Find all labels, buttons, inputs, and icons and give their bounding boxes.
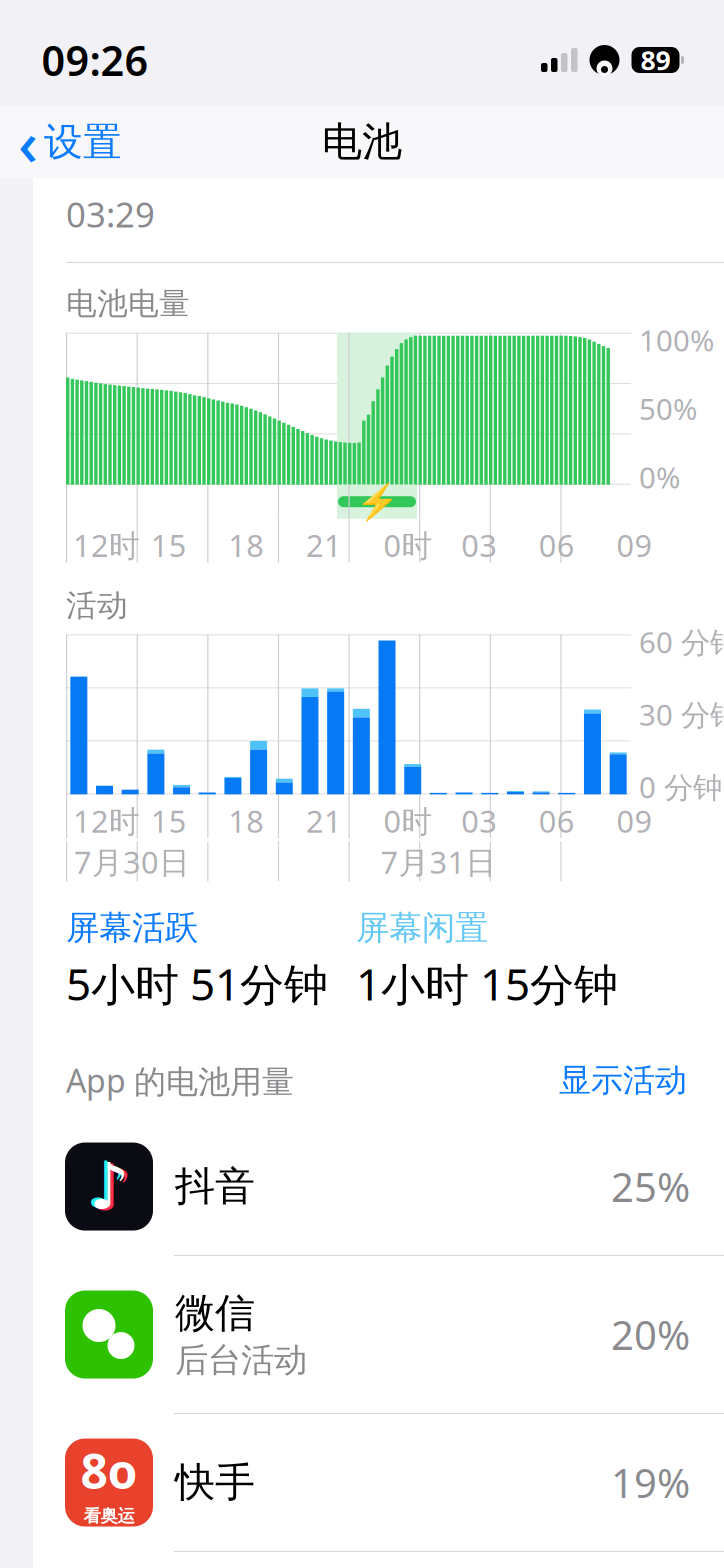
- staticText: 0时: [383, 525, 432, 565]
- staticText: 7月30日: [74, 841, 190, 882]
- staticText: 屏幕闲置: [356, 907, 488, 948]
- staticText: App 的电池用量: [66, 1059, 294, 1102]
- staticText: 0时: [383, 800, 432, 841]
- staticText: 03:29: [66, 191, 155, 237]
- staticText: 09: [616, 525, 652, 565]
- staticText: 06: [539, 525, 575, 565]
- staticText: ♪: [91, 1152, 132, 1224]
- staticText: 0%: [639, 458, 680, 497]
- staticText: 看奥运: [83, 1505, 134, 1527]
- staticText: 50%: [639, 389, 697, 428]
- staticText: 06: [539, 800, 575, 841]
- staticText: ♪: [85, 1149, 126, 1221]
- staticText: 15: [151, 525, 187, 565]
- staticText: 25%: [611, 1160, 690, 1213]
- staticText: 15: [151, 800, 187, 841]
- staticText: ⚡: [355, 482, 398, 521]
- staticText: 抖音: [175, 1162, 255, 1211]
- button[interactable]: 显示活动: [555, 1055, 691, 1106]
- staticText: 03: [461, 525, 497, 565]
- button[interactable]: ‹: [0, 93, 122, 191]
- staticText: 03: [461, 800, 497, 841]
- button[interactable]: 微信: [33, 1255, 724, 1413]
- staticText: ♪: [88, 1150, 129, 1223]
- staticText: 19%: [611, 1456, 690, 1509]
- staticText: 活动: [66, 587, 128, 624]
- staticText: 0 分钟: [639, 767, 722, 806]
- staticText: 快手: [175, 1458, 255, 1507]
- staticText: 微信: [175, 1288, 255, 1338]
- staticText: 20%: [611, 1308, 690, 1361]
- staticText: 12时: [73, 525, 140, 565]
- staticText: 60 分钟: [639, 622, 724, 661]
- staticText: 屏幕活跃: [66, 907, 198, 948]
- staticText: 09:26: [41, 33, 148, 87]
- staticText: 21: [306, 525, 342, 565]
- staticText: 30 分钟: [639, 695, 724, 734]
- button[interactable]: ((¡)): [33, 1551, 724, 1568]
- staticText: 18: [228, 800, 264, 841]
- staticText: 电池: [322, 117, 402, 166]
- staticText: 09: [616, 800, 652, 841]
- staticText: 显示活动: [559, 1061, 687, 1100]
- staticText: 8o: [80, 1438, 137, 1502]
- staticText: 89: [640, 42, 670, 78]
- staticText: 18: [228, 525, 264, 565]
- staticText: 7月31日: [380, 841, 496, 882]
- staticText: 12时: [73, 800, 140, 841]
- button[interactable]: ♪: [33, 1118, 724, 1255]
- staticText: 1小时 15分钟: [356, 954, 618, 1013]
- staticText: 电池电量: [66, 285, 190, 323]
- staticText: 设置: [44, 118, 122, 166]
- staticText: 后台活动: [175, 1340, 307, 1380]
- staticText: ‹: [18, 101, 38, 183]
- staticText: 5小时 51分钟: [66, 954, 328, 1013]
- staticText: 100%: [639, 321, 714, 360]
- staticText: 21: [306, 800, 342, 841]
- button[interactable]: 8o: [33, 1413, 724, 1551]
